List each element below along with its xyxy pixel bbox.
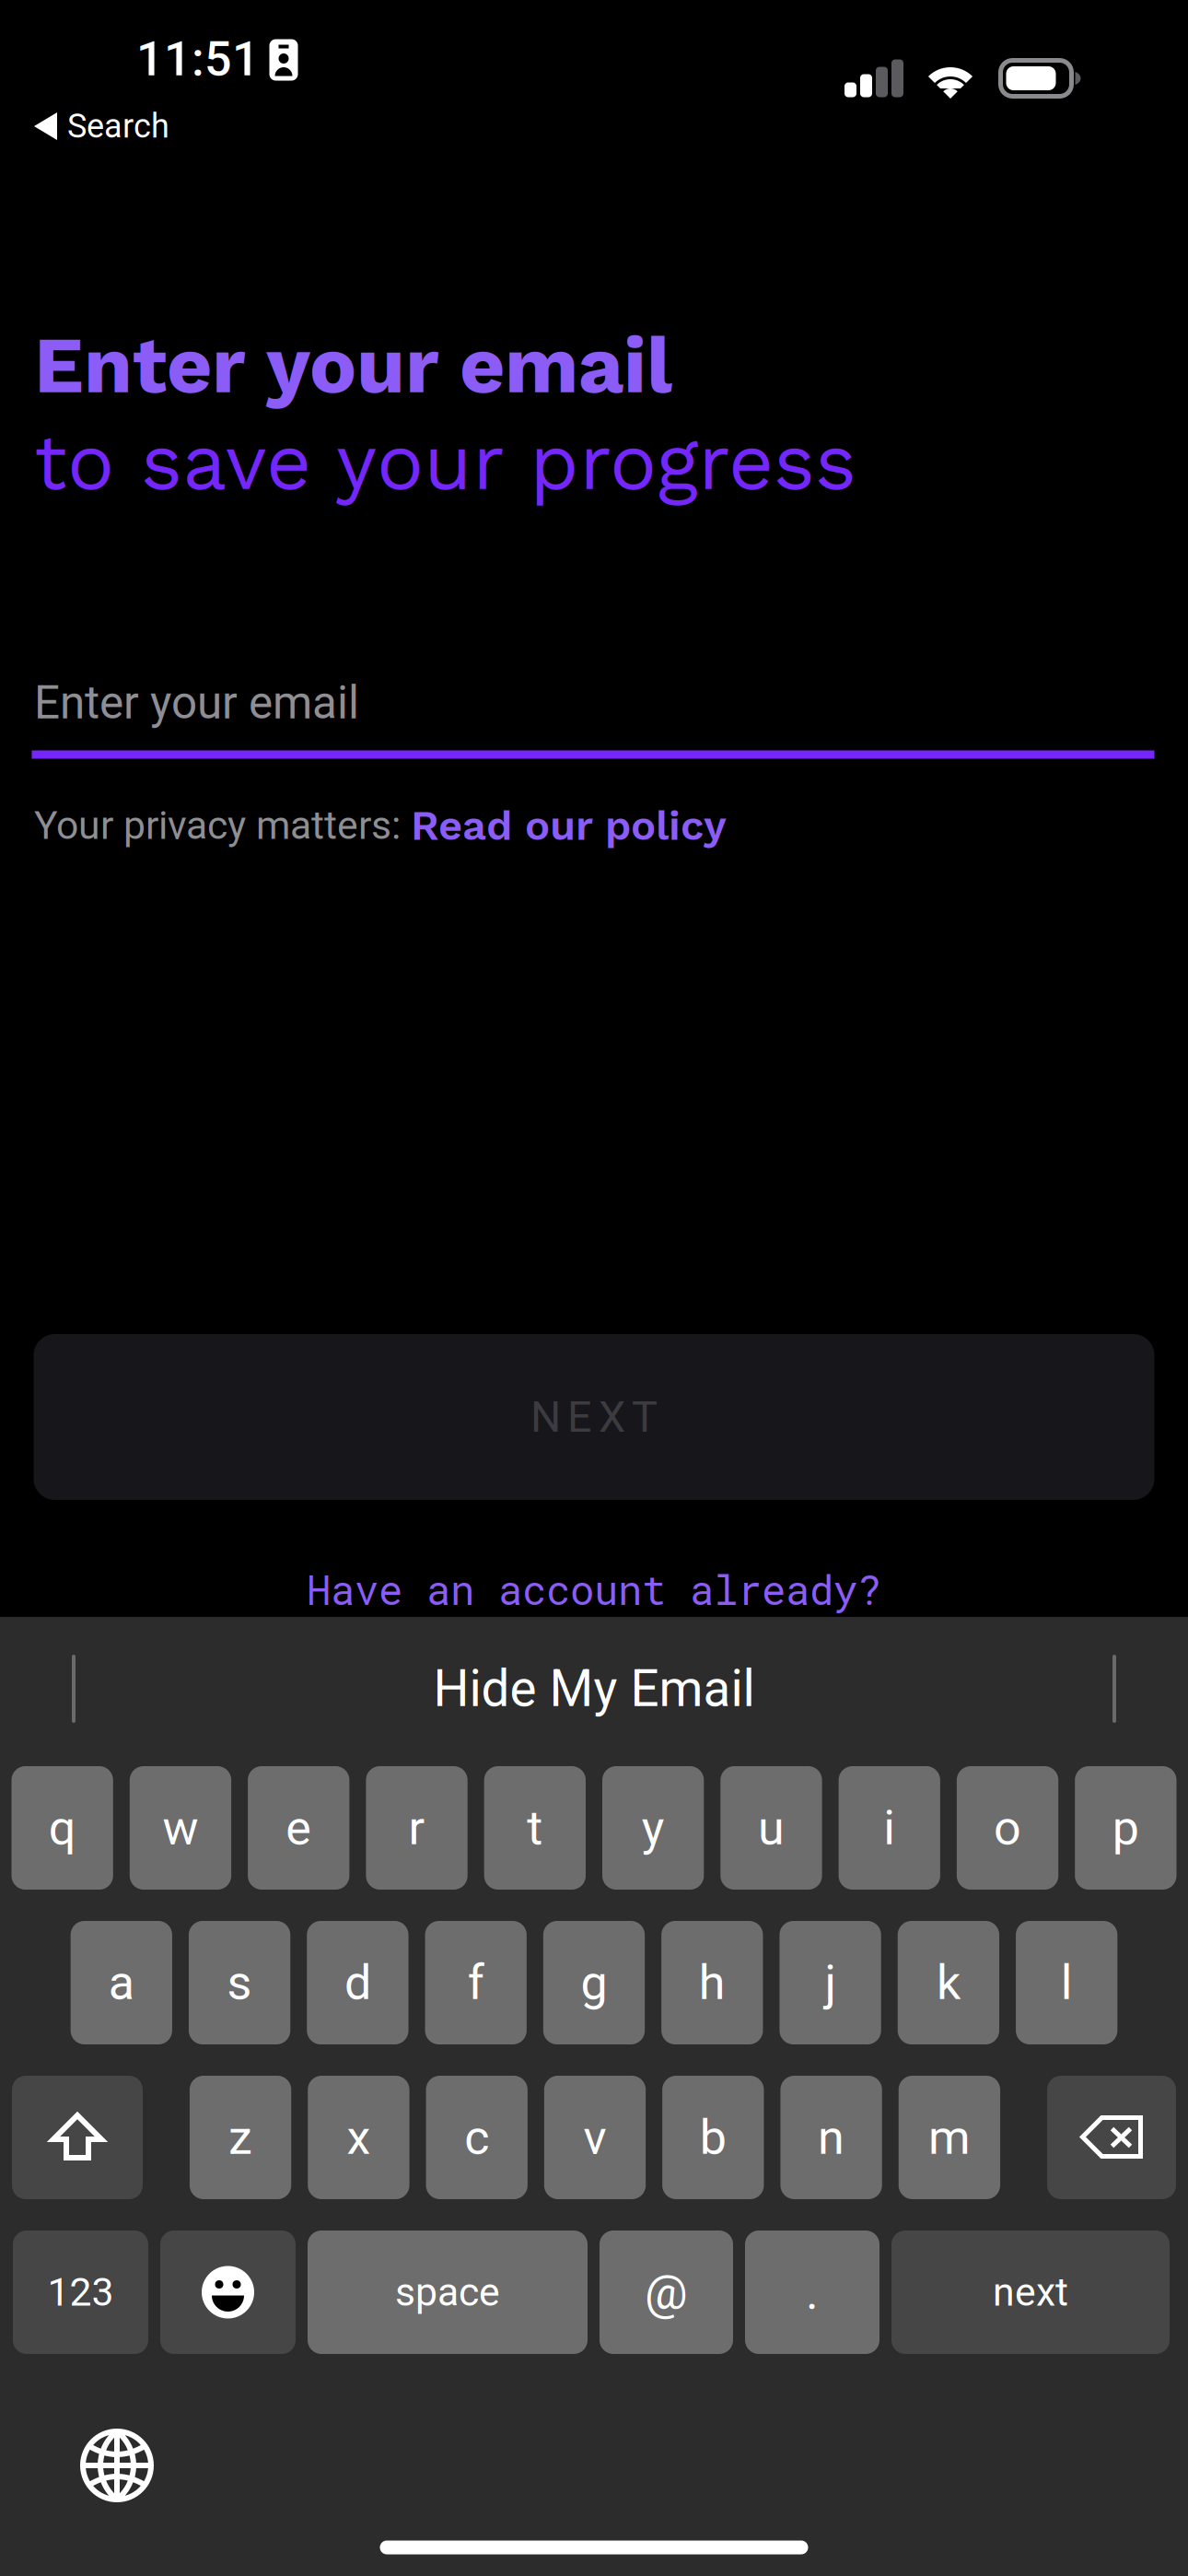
staticText: n [818,2109,845,2165]
button[interactable]: Delete [1047,2076,1176,2199]
staticText: f [468,1955,484,2011]
button[interactable]: o [957,1766,1058,1890]
button[interactable]: e [248,1766,349,1890]
button[interactable]: q [12,1766,113,1890]
staticText: m [928,2109,971,2165]
button[interactable]: Have an account already? [307,1563,881,1616]
staticText: r [409,1800,425,1856]
staticText: a [108,1955,134,2011]
staticText: i [883,1800,895,1856]
staticText: Enter your email [34,676,359,730]
button[interactable]: r [366,1766,468,1890]
button[interactable]: n [780,2076,882,2199]
button[interactable]: s [189,1921,290,2044]
button[interactable]: f [425,1921,527,2044]
button[interactable]: y [602,1766,704,1890]
button[interactable]: a [71,1921,172,2044]
button[interactable]: t [484,1766,586,1890]
staticText: e [286,1800,312,1856]
button[interactable]: h [661,1921,763,2044]
button[interactable]: Search [0,96,188,157]
button[interactable]: k [898,1921,999,2044]
button[interactable]: space [308,2231,588,2354]
staticText: c [464,2109,489,2165]
staticText: h [699,1955,726,2011]
staticText: NEXT [530,1392,658,1442]
staticText: y [642,1800,665,1856]
button[interactable]: Emoji [160,2231,296,2354]
staticText: v [583,2109,606,2165]
staticText: Search [67,107,169,146]
staticText: Have an account already? [307,1563,881,1616]
button[interactable]: g [543,1921,645,2044]
button[interactable]: u [720,1766,822,1890]
button[interactable]: i [839,1766,940,1890]
staticText: Hide My Email [433,1659,755,1718]
staticText: w [163,1800,198,1856]
staticText: p [1112,1800,1139,1856]
button[interactable]: d [307,1921,409,2044]
staticText: x [347,2109,371,2165]
button[interactable]: p [1075,1766,1176,1890]
staticText: next [993,2269,1068,2315]
staticText: space [395,2269,500,2315]
button[interactable]: . [745,2231,879,2354]
staticText: 123 [47,2269,114,2315]
staticText: Your privacy matters: [34,802,411,849]
staticText: @ [645,2264,688,2320]
staticText: t [527,1800,543,1856]
button[interactable]: Next keyboard [60,2408,174,2523]
staticText: Enter your email [34,319,672,411]
button[interactable]: l [1016,1921,1117,2044]
button[interactable]: c [426,2076,528,2199]
button[interactable]: x [308,2076,409,2199]
staticText: . [806,2264,819,2320]
button[interactable]: w [130,1766,231,1890]
button[interactable]: @ [600,2231,733,2354]
button[interactable]: Hide My Email [0,1637,1188,1740]
staticText: k [936,1955,960,2011]
staticText: 11:51 [136,31,260,87]
button[interactable]: next [891,2231,1170,2354]
staticText: g [581,1955,607,2011]
button[interactable]: Shift [12,2076,143,2199]
button[interactable]: b [662,2076,764,2199]
staticText: d [344,1955,371,2011]
staticText: j [825,1955,836,2011]
button[interactable]: v [544,2076,646,2199]
staticText: to save your progress [34,416,856,508]
staticText: u [758,1800,785,1856]
staticText: q [49,1800,76,1856]
button[interactable]: 123 [13,2231,148,2354]
staticText: o [994,1800,1021,1856]
button[interactable]: Read our policy [411,801,727,850]
staticText: Read our policy [411,801,727,850]
staticText: z [228,2109,252,2165]
button[interactable]: NEXT [34,1334,1154,1500]
button[interactable]: m [899,2076,1000,2199]
button[interactable]: j [780,1921,881,2044]
staticText: l [1061,1955,1073,2011]
button[interactable]: z [190,2076,291,2199]
staticText: s [227,1955,252,2011]
staticText: b [700,2109,726,2165]
